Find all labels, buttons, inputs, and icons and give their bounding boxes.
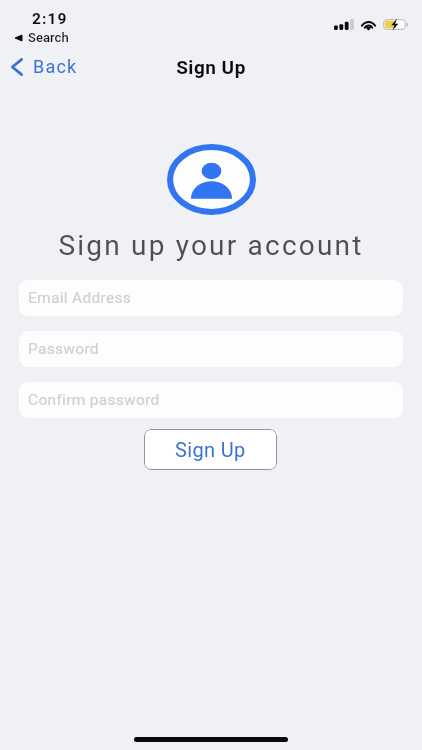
button[interactable]: Email Address — [19, 280, 403, 316]
staticText: Password — [28, 340, 99, 358]
staticText: Sign Up — [0, 56, 422, 78]
other: Account avatar — [167, 144, 256, 215]
button[interactable]: Back — [6, 52, 84, 81]
staticText: Back — [33, 56, 78, 77]
staticText: Sign up your account — [0, 229, 422, 262]
staticText: 2:19 — [32, 10, 68, 28]
button[interactable]: Confirm password — [19, 382, 403, 418]
other: Wi-Fi — [360, 19, 377, 30]
staticText: Sign Up — [175, 438, 246, 461]
button[interactable]: Password — [19, 331, 403, 367]
other: Battery charging — [383, 19, 408, 30]
button[interactable]: Sign Up — [144, 429, 277, 470]
staticText: Confirm password — [28, 391, 160, 409]
staticText: Email Address — [28, 289, 132, 307]
staticText: Search — [28, 30, 69, 45]
other: Cellular signal — [334, 19, 354, 30]
